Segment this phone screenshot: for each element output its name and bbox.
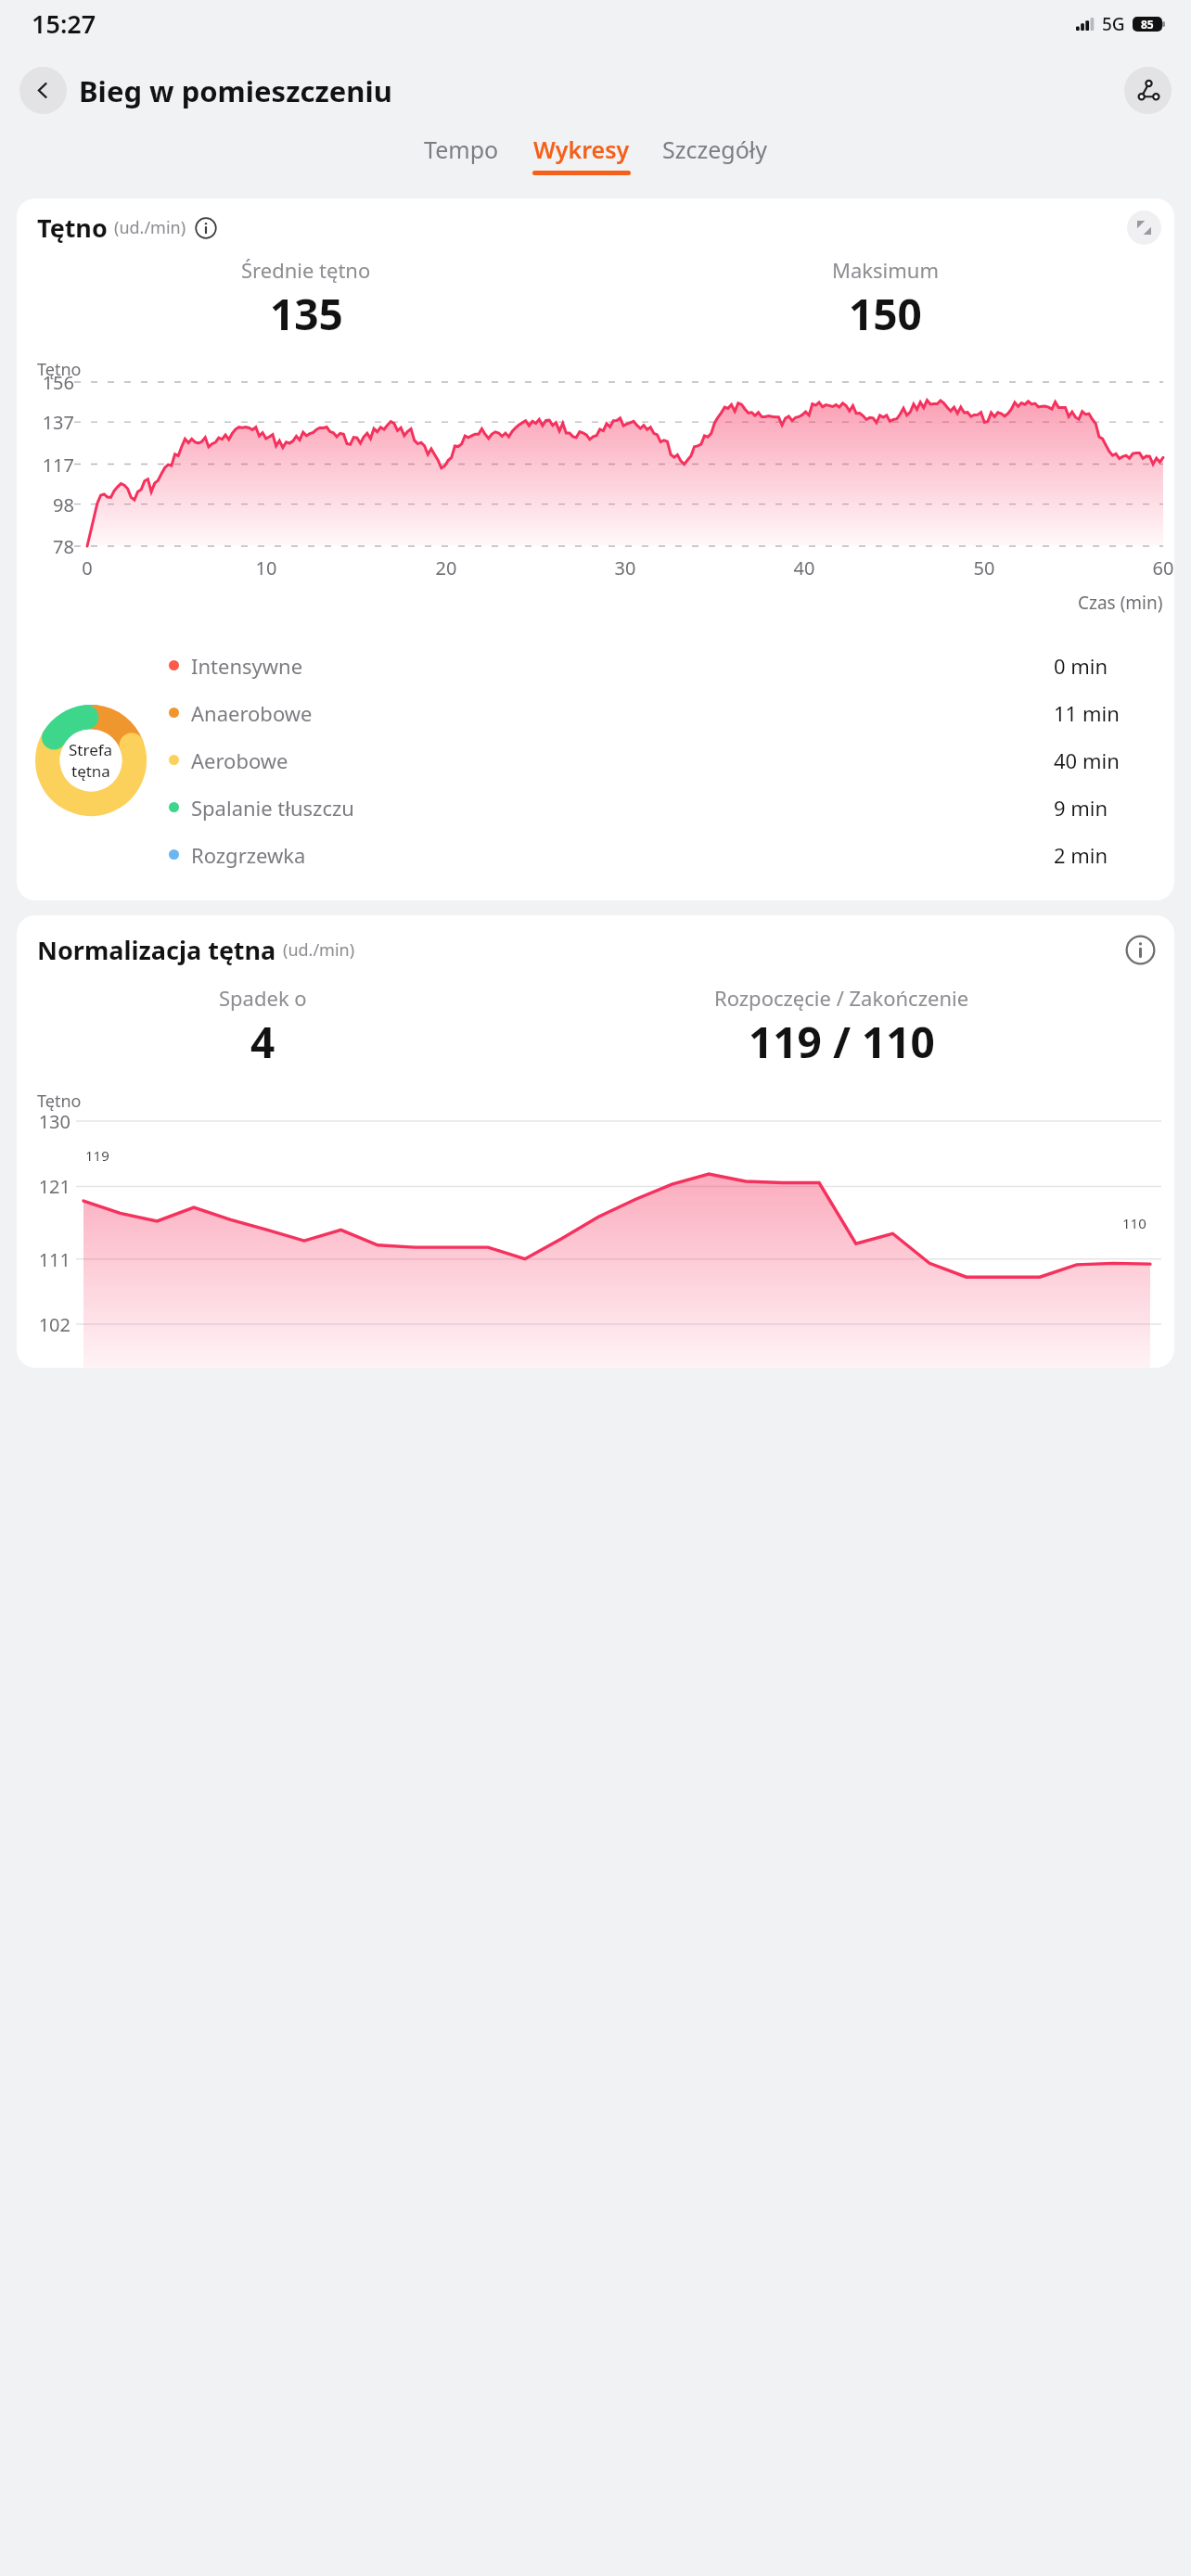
staticText: 102 (24, 1312, 70, 1337)
staticText: 20 (433, 555, 459, 580)
staticText: 119 / 110 (749, 1013, 935, 1071)
staticText: 40 (791, 555, 817, 580)
staticText: Szczegóły (662, 134, 768, 165)
button[interactable]: Wstecz (19, 67, 67, 114)
staticText: Rozgrzewka (191, 841, 1054, 869)
staticText: Rozpoczęcie / Zakończenie (714, 984, 969, 1012)
button[interactable]: Tempo (417, 134, 506, 171)
staticText: Czas (min) (1078, 591, 1163, 615)
staticText: Tętno (37, 1090, 82, 1113)
staticText: 60 (1150, 555, 1174, 580)
staticText: 130 (24, 1109, 70, 1134)
staticText: 10 (253, 555, 279, 580)
staticText: 119 (85, 1146, 109, 1165)
staticText: Aerobowe (191, 746, 1054, 774)
staticText: Spalanie tłuszczu (191, 794, 1054, 822)
staticText: Średnie tętno (241, 256, 371, 284)
staticText: (ud./min) (283, 938, 355, 962)
staticText: 5G (1102, 12, 1125, 36)
button[interactable]: Aerobowe (169, 736, 1156, 784)
staticText: 110 (1122, 1214, 1146, 1232)
staticText: tętna (71, 760, 110, 782)
staticText: 2 min (1054, 841, 1156, 869)
staticText: 11 min (1054, 699, 1156, 727)
staticText: 137 (24, 410, 74, 435)
button[interactable]: Wykresy (526, 134, 637, 175)
staticText: 15:27 (32, 6, 96, 41)
button[interactable]: Informacje (195, 217, 217, 239)
staticText: 156 (24, 370, 74, 395)
staticText: 78 (24, 534, 74, 559)
staticText: Strefa (69, 739, 113, 760)
staticText: 9 min (1054, 794, 1156, 822)
button[interactable]: Szczegóły (656, 134, 775, 171)
staticText: 0 (74, 555, 100, 580)
staticText: Wykresy (533, 134, 630, 165)
staticText: Normalizacja tętna (37, 933, 276, 967)
staticText: 111 (24, 1247, 70, 1272)
staticText: 85 (1141, 17, 1154, 32)
button[interactable]: Anaerobowe (169, 689, 1156, 736)
staticText: Tętno (37, 358, 82, 381)
button[interactable]: Rozgrzewka (169, 831, 1156, 878)
button[interactable]: Informacje (1125, 935, 1156, 965)
staticText: Anaerobowe (191, 699, 1054, 727)
staticText: 121 (24, 1174, 70, 1199)
button[interactable]: Pełny ekran (1127, 210, 1161, 245)
staticText: 4 (250, 1013, 275, 1071)
staticText: (ud./min) (114, 216, 186, 239)
staticText: 135 (270, 285, 343, 343)
staticText: 40 min (1054, 746, 1156, 774)
staticText: 117 (24, 453, 74, 478)
button[interactable]: Udostępnij (1124, 67, 1172, 114)
staticText: Spadek o (219, 984, 307, 1012)
staticText: 50 (971, 555, 997, 580)
staticText: 98 (24, 492, 74, 517)
staticText: Tętno (37, 210, 108, 245)
staticText: Bieg w pomieszczeniu (79, 71, 392, 110)
button[interactable]: Spalanie tłuszczu (169, 784, 1156, 831)
staticText: Tempo (424, 134, 499, 165)
staticText: Maksimum (832, 256, 939, 284)
staticText: 150 (849, 285, 922, 343)
button[interactable]: Intensywne (169, 642, 1156, 689)
staticText: Intensywne (191, 652, 1054, 680)
staticText: 0 min (1054, 652, 1156, 680)
staticText: 30 (612, 555, 638, 580)
